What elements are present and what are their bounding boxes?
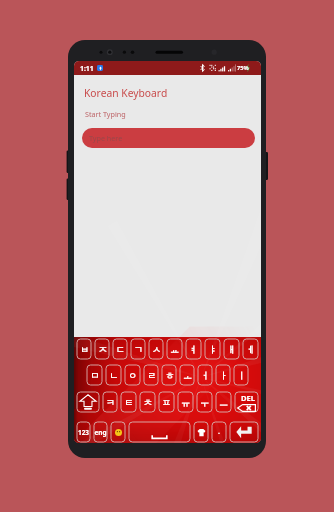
button[interactable]: ㅈ bbox=[95, 339, 109, 359]
staticText: ㅔ bbox=[246, 344, 255, 355]
button[interactable]: ㅅ bbox=[149, 339, 163, 359]
staticText: ㅜ bbox=[200, 397, 209, 408]
button[interactable]: Shift bbox=[77, 392, 99, 412]
staticText: ㅗ bbox=[183, 370, 192, 381]
staticText: ㅌ bbox=[124, 397, 133, 408]
button[interactable]: 123 bbox=[77, 422, 90, 442]
button[interactable]: Space bbox=[129, 422, 190, 442]
button[interactable]: ㄴ bbox=[106, 365, 121, 385]
staticText: Start Typing bbox=[85, 109, 126, 119]
staticText: DEL bbox=[241, 393, 256, 403]
staticText: ㅠ bbox=[181, 397, 190, 408]
button[interactable]: ㅓ bbox=[198, 365, 212, 385]
staticText: 123 bbox=[78, 428, 89, 437]
staticText: ㅁ bbox=[90, 370, 99, 381]
staticText: ㅊ bbox=[143, 397, 152, 408]
staticText: eng bbox=[94, 428, 107, 437]
button[interactable]: ㅇ bbox=[125, 365, 140, 385]
button[interactable]: ㅜ bbox=[197, 392, 212, 412]
staticText: ㄱ bbox=[134, 344, 143, 355]
button[interactable]: ㅊ bbox=[140, 392, 155, 412]
button[interactable]: . bbox=[212, 422, 226, 442]
staticText: ㄴ bbox=[109, 370, 118, 381]
button[interactable]: ㅕ bbox=[186, 339, 201, 359]
button[interactable]: ㅣ bbox=[234, 365, 248, 385]
staticText: ㄹ bbox=[147, 370, 156, 381]
button[interactable]: ㄱ bbox=[131, 339, 145, 359]
staticText: ㅋ bbox=[106, 397, 115, 408]
staticText: Korean Keyboard bbox=[84, 86, 168, 100]
staticText: ㅐ bbox=[227, 344, 236, 355]
staticText: ㅣ bbox=[237, 370, 246, 381]
button[interactable]: ㅌ bbox=[121, 392, 136, 412]
button[interactable]: ㅗ bbox=[180, 365, 194, 385]
button[interactable]: ㅡ bbox=[216, 392, 231, 412]
staticText: ㅍ bbox=[162, 397, 171, 408]
button[interactable]: ㅠ bbox=[178, 392, 193, 412]
button[interactable]: ㅋ bbox=[103, 392, 117, 412]
button[interactable]: Emoji bbox=[111, 422, 125, 442]
staticText: ㅅ bbox=[152, 344, 161, 355]
button[interactable]: ㅔ bbox=[243, 339, 258, 359]
button[interactable]: Theme bbox=[194, 422, 208, 442]
staticText: 75% bbox=[237, 64, 249, 72]
staticText: ㅡ bbox=[219, 397, 228, 408]
staticText: . bbox=[218, 427, 220, 437]
staticText: Type here bbox=[89, 133, 123, 143]
staticText: ㄷ bbox=[116, 344, 125, 355]
staticText: ㅛ bbox=[170, 344, 179, 355]
staticText: 1:11 bbox=[80, 64, 94, 73]
staticText: ㅕ bbox=[189, 344, 198, 355]
staticText: ㅈ bbox=[98, 344, 107, 355]
button[interactable]: Delete bbox=[235, 392, 258, 412]
button[interactable]: ㅍ bbox=[159, 392, 174, 412]
button[interactable]: ㄷ bbox=[113, 339, 127, 359]
staticText: ㅓ bbox=[201, 370, 210, 381]
staticText: ㅎ bbox=[165, 370, 174, 381]
button[interactable]: ㅑ bbox=[205, 339, 220, 359]
button[interactable]: ㄹ bbox=[144, 365, 158, 385]
button[interactable]: ㅎ bbox=[162, 365, 176, 385]
staticText: ㅏ bbox=[219, 370, 228, 381]
button[interactable]: eng bbox=[94, 422, 107, 442]
staticText: ㅑ bbox=[208, 344, 217, 355]
button[interactable]: ㅐ bbox=[224, 339, 239, 359]
staticText: ㅇ bbox=[128, 370, 137, 381]
button[interactable]: Enter bbox=[230, 422, 258, 442]
button[interactable]: ㅛ bbox=[167, 339, 182, 359]
button[interactable]: Type here bbox=[82, 128, 255, 148]
button[interactable]: ㅏ bbox=[216, 365, 230, 385]
button[interactable]: ㅁ bbox=[87, 365, 102, 385]
staticText: ㅂ bbox=[80, 344, 89, 355]
button[interactable]: ㅂ bbox=[77, 339, 91, 359]
